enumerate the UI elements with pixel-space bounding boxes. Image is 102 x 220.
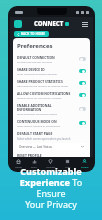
button[interactable]: Toggle <box>79 57 86 61</box>
button[interactable]: SHARE DEVICE ID <box>17 65 86 77</box>
button[interactable]: Overview — Last Status <box>17 143 86 150</box>
staticText: Stats <box>31 165 37 168</box>
staticText: RESET PROFILE <box>17 153 42 157</box>
staticText: ENABLE ADDITIONAL INFORMATION <box>17 103 76 111</box>
staticText: Overview — Last Status <box>19 145 52 149</box>
button[interactable]: DEFAULT CONNECTION <box>17 53 86 65</box>
button[interactable]: ENABLE ADDITIONAL INFORMATION <box>17 101 86 117</box>
staticText: Connect <box>46 165 56 168</box>
staticText: Receive alerts for connection changes <box>17 96 62 99</box>
staticText: Preferences <box>17 42 53 50</box>
button[interactable]: SHARE PRODUCT STATISTICS <box>17 77 86 89</box>
button[interactable]: Connect <box>42 157 59 170</box>
staticText: Profile <box>81 165 89 168</box>
button[interactable]: CONTINUOUS MODE ON <box>17 117 86 129</box>
button[interactable]: Home <box>14 20 22 28</box>
staticText: CONTINUOUS MODE ON <box>17 119 57 123</box>
staticText: Logs <box>65 165 71 168</box>
staticText: Select which screen opens when you launc… <box>17 137 71 141</box>
staticText: Allow anonymous device identifier <box>17 72 58 75</box>
button[interactable]: Toggle <box>79 121 86 125</box>
staticText: CONNECT <box>34 20 64 28</box>
staticText: Help improve the product by sharing usag… <box>17 84 68 87</box>
staticText: ALLOW CUSTOM NOTIFICATIONS <box>17 91 71 95</box>
staticText: Show extended connection details <box>17 112 58 115</box>
button[interactable]: Toggle <box>79 107 86 111</box>
staticText: Choose how the app connects <box>17 60 53 63</box>
button[interactable]: Menu <box>81 20 89 28</box>
staticText: SHARE DEVICE ID <box>17 67 45 71</box>
button[interactable]: Toggle <box>79 81 86 85</box>
button[interactable]: BACK TO HOME <box>14 31 49 37</box>
staticText: BACK TO HOME <box>21 32 46 36</box>
button[interactable]: Stats <box>26 157 42 170</box>
staticText: DEFAULT CONNECTION <box>17 55 55 59</box>
button[interactable]: ALLOW CUSTOM NOTIFICATIONS <box>17 89 86 101</box>
button[interactable]: Toggle <box>79 93 86 97</box>
button[interactable]: Logs <box>59 157 76 170</box>
button[interactable]: Profile <box>76 157 93 170</box>
staticText: DEFAULT START PAGE <box>17 131 53 136</box>
staticText: Home <box>15 165 22 168</box>
staticText: Customizable Experience To Ensure Your P… <box>6 165 96 210</box>
button[interactable]: Home <box>10 157 26 170</box>
button[interactable]: Toggle <box>79 69 86 73</box>
staticText: SHARE PRODUCT STATISTICS <box>17 79 63 83</box>
staticText: Keep session running in background <box>17 124 60 127</box>
